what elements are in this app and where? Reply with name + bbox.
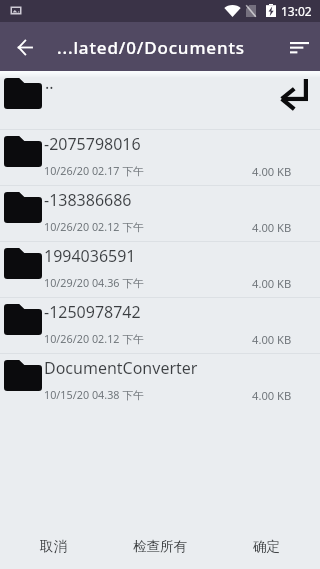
button[interactable]: 检查所有 <box>106 515 213 569</box>
button[interactable]: -2075798016 <box>0 130 320 185</box>
button[interactable]: 取消 <box>0 515 106 569</box>
staticText: 确定 <box>253 538 280 555</box>
staticText: 取消 <box>40 538 67 555</box>
staticText: .. <box>45 72 54 94</box>
staticText: 10/26/20 02.12 下午 <box>44 219 144 234</box>
staticText: 13:02 <box>281 3 312 19</box>
staticText: 10/15/20 04.38 下午 <box>44 387 144 402</box>
staticText: 10/26/20 02.12 下午 <box>44 331 144 346</box>
button[interactable]: -1250978742 <box>0 298 320 353</box>
button[interactable]: DocumentConverter <box>0 354 320 409</box>
staticText: 4.00 KB <box>252 164 292 179</box>
staticText: 4.00 KB <box>252 388 292 403</box>
staticText: 10/29/20 04.36 下午 <box>44 275 144 290</box>
staticText: 4.00 KB <box>252 276 292 291</box>
staticText: 10/26/20 02.17 下午 <box>44 163 144 178</box>
button[interactable]: .. <box>0 78 320 129</box>
button[interactable]: 确定 <box>213 515 320 569</box>
staticText: 检查所有 <box>133 538 187 555</box>
button[interactable]: Sort <box>281 29 317 65</box>
staticText: 4.00 KB <box>252 332 292 347</box>
staticText: -2075798016 <box>44 133 141 155</box>
staticText: -138386686 <box>44 189 132 211</box>
button[interactable]: -138386686 <box>0 186 320 241</box>
staticText: DocumentConverter <box>44 357 198 379</box>
button[interactable]: Back <box>8 30 42 64</box>
button[interactable]: 1994036591 <box>0 242 320 297</box>
staticText: -1250978742 <box>44 301 141 323</box>
staticText: 1994036591 <box>44 245 136 267</box>
staticText: 4.00 KB <box>252 220 292 235</box>
staticText: ...lated/0/Documents <box>57 36 245 59</box>
